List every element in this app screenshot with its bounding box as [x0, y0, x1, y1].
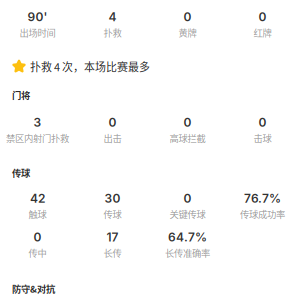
staticText: 0 [108, 115, 116, 130]
staticText: 出场时间 [19, 26, 55, 39]
staticText: 关键传球 [169, 207, 205, 221]
staticText: 30 [104, 191, 120, 206]
staticText: 传球 [12, 166, 30, 179]
staticText: 门将 [12, 88, 30, 102]
staticText: 0 [258, 115, 266, 130]
staticText: 76.7% [244, 191, 281, 206]
staticText: 高球拦截 [169, 131, 205, 145]
staticText: 击球 [253, 131, 271, 145]
staticText: 64.7% [168, 230, 207, 244]
staticText: 长传准确率 [165, 246, 210, 259]
staticText: 扑救 [103, 26, 121, 39]
staticText: 0 [258, 10, 266, 24]
staticText: 禁区内射门扑救 [6, 131, 69, 145]
staticText: 触球 [28, 207, 46, 221]
staticText: 0 [183, 115, 191, 130]
staticText: 42 [30, 191, 45, 206]
staticText: 扑救 4 次，本场比赛最多 [30, 59, 150, 74]
staticText: 4 [108, 10, 116, 24]
staticText: 0 [183, 10, 191, 24]
staticText: 0 [183, 191, 191, 206]
staticText: 黄牌 [178, 26, 196, 39]
staticText: 传球成功率 [240, 207, 285, 221]
staticText: 传球 [103, 207, 121, 221]
staticText: 90' [27, 10, 47, 24]
staticText: 防守&对抗 [12, 282, 55, 295]
staticText: 17 [106, 230, 118, 244]
staticText: 红牌 [253, 26, 271, 39]
staticText: 长传 [103, 246, 121, 259]
staticText: 3 [33, 115, 41, 130]
staticText: 出击 [103, 131, 121, 145]
staticText: 0 [33, 230, 41, 244]
staticText: 传中 [28, 246, 46, 259]
